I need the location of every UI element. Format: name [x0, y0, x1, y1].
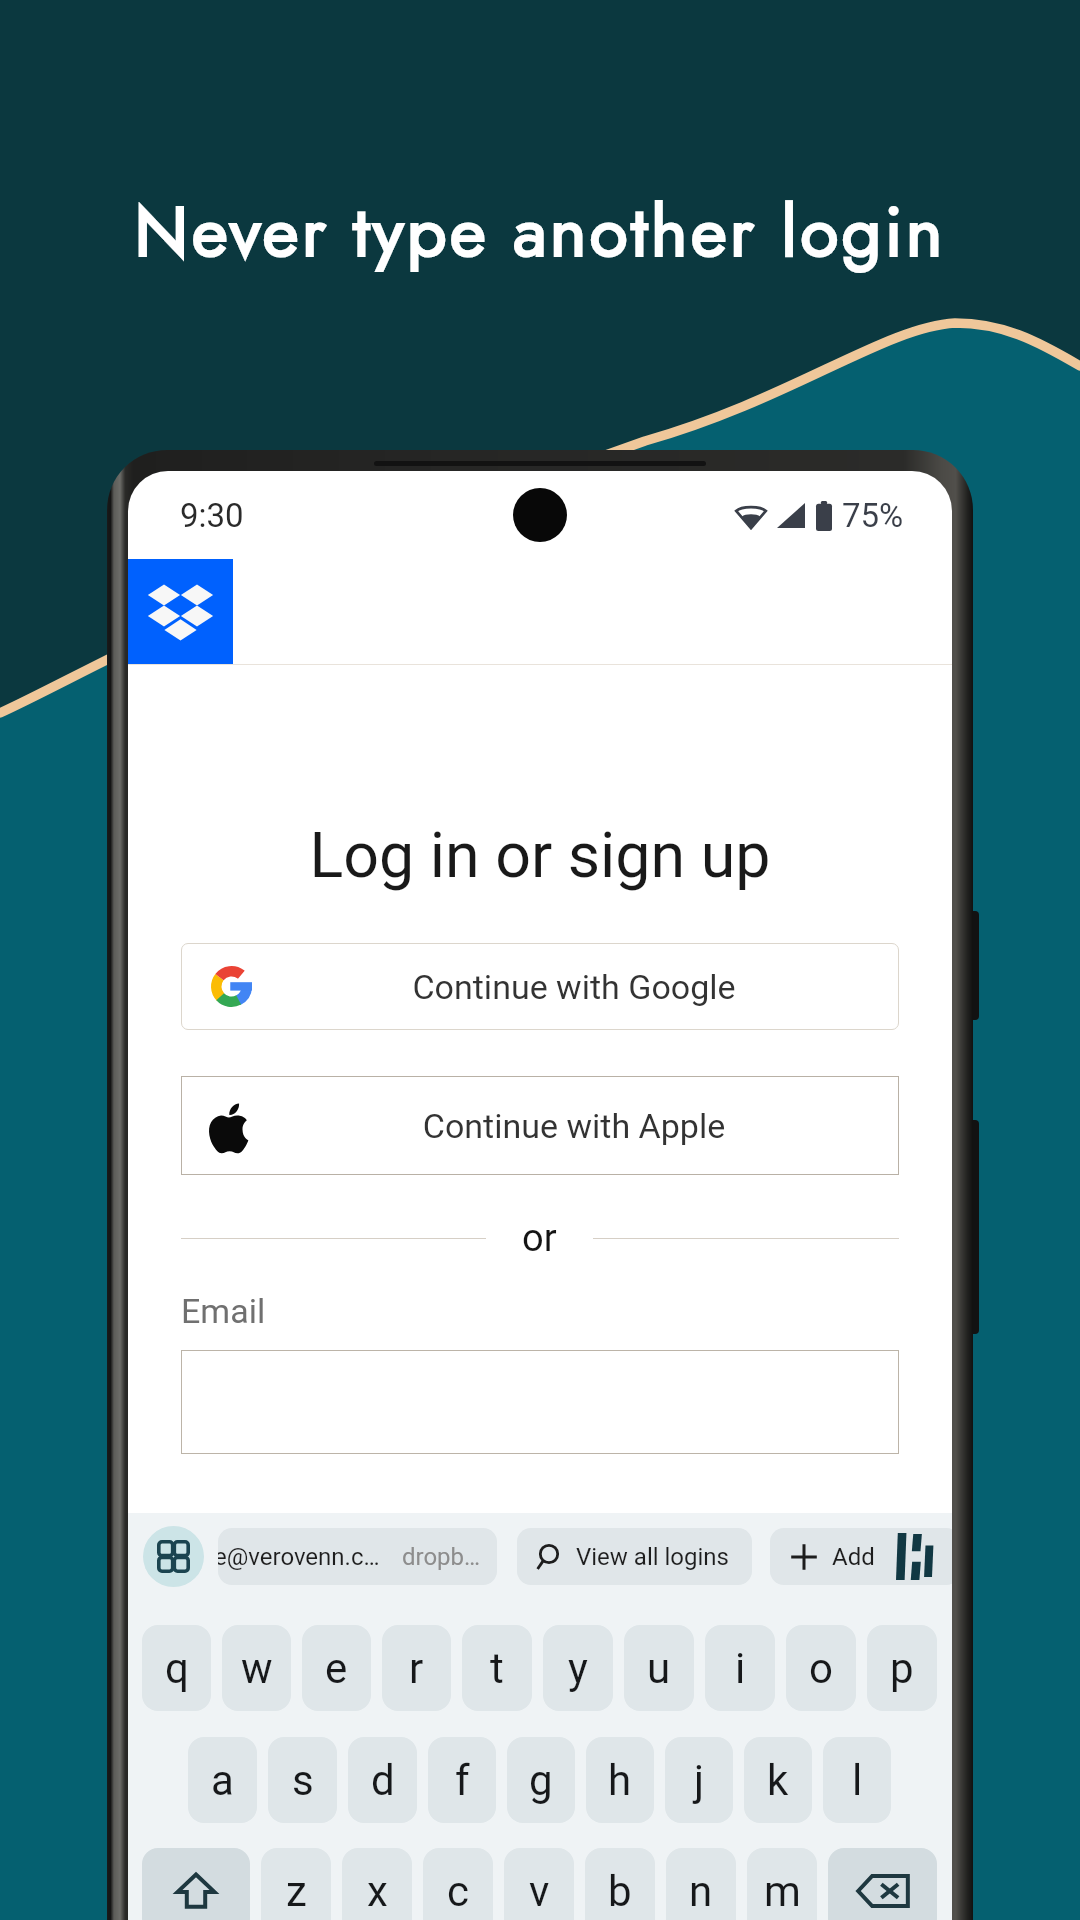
staticText: p — [890, 1644, 914, 1693]
staticText: Email — [181, 1291, 266, 1331]
button[interactable]: e — [302, 1625, 371, 1711]
staticText: Continue with Apple — [249, 1106, 899, 1146]
staticText: l — [852, 1756, 863, 1805]
staticText: q — [165, 1644, 189, 1693]
button[interactable]: h — [586, 1737, 654, 1823]
staticText: v — [529, 1867, 550, 1916]
button[interactable]: s — [268, 1737, 337, 1823]
staticText: b — [608, 1867, 632, 1916]
staticText: a — [211, 1756, 234, 1805]
button[interactable]: Continue with Apple — [181, 1076, 899, 1175]
button[interactable]: q — [142, 1625, 211, 1711]
staticText: 75% — [842, 496, 904, 535]
staticText: Add — [832, 1543, 875, 1571]
staticText: s — [292, 1756, 314, 1805]
button[interactable]: k — [744, 1737, 812, 1823]
button[interactable]: p — [867, 1625, 937, 1711]
staticText: Never type another login — [0, 181, 1080, 282]
other: Backspace — [856, 1870, 910, 1912]
button[interactable]: r — [382, 1625, 451, 1711]
button[interactable]: e@verovenn.c… — [218, 1528, 497, 1585]
staticText: View all logins — [576, 1543, 729, 1571]
staticText: m — [764, 1867, 801, 1916]
button[interactable]: Dropbox — [128, 559, 233, 664]
staticText: h — [608, 1756, 632, 1805]
button[interactable]: t — [462, 1625, 532, 1711]
staticText: j — [694, 1756, 705, 1805]
button[interactable]: y — [543, 1625, 613, 1711]
button[interactable]: z — [261, 1848, 331, 1920]
staticText: o — [809, 1644, 833, 1693]
other: Dashlane — [896, 1532, 932, 1580]
staticText: Log in or sign up — [128, 819, 952, 892]
button[interactable]: a — [188, 1737, 257, 1823]
staticText: g — [529, 1756, 553, 1805]
staticText: t — [490, 1644, 504, 1693]
staticText: Continue with Google — [249, 967, 899, 1007]
staticText: d — [371, 1756, 395, 1805]
staticText: dropb… — [402, 1543, 481, 1571]
button[interactable]: w — [222, 1625, 291, 1711]
staticText: x — [367, 1867, 388, 1916]
staticText: e — [325, 1644, 348, 1693]
other: Shift — [173, 1868, 219, 1914]
button[interactable]: j — [665, 1737, 733, 1823]
staticText: r — [409, 1644, 424, 1693]
staticText: y — [568, 1644, 588, 1693]
button[interactable]: c — [423, 1848, 493, 1920]
button[interactable] — [181, 1350, 899, 1454]
button[interactable]: n — [666, 1848, 736, 1920]
button[interactable]: f — [428, 1737, 496, 1823]
button[interactable]: m — [747, 1848, 817, 1920]
button[interactable]: Shift — [142, 1848, 250, 1920]
button[interactable]: g — [507, 1737, 575, 1823]
button[interactable]: d — [348, 1737, 417, 1823]
button[interactable]: Backspace — [828, 1848, 937, 1920]
staticText: w — [241, 1644, 273, 1693]
staticText: 9:30 — [180, 496, 244, 535]
staticText: f — [455, 1756, 470, 1805]
button[interactable]: u — [624, 1625, 694, 1711]
staticText: or — [522, 1216, 557, 1261]
staticText: k — [767, 1756, 789, 1805]
button[interactable]: View all logins — [534, 1528, 752, 1585]
staticText: i — [735, 1644, 746, 1693]
button[interactable]: v — [504, 1848, 574, 1920]
staticText: c — [447, 1867, 469, 1916]
staticText: e@verovenn.c… — [218, 1543, 380, 1571]
staticText: u — [647, 1644, 671, 1693]
staticText: z — [286, 1867, 307, 1916]
button[interactable]: i — [705, 1625, 775, 1711]
staticText: n — [689, 1867, 713, 1916]
button[interactable]: Add — [788, 1528, 952, 1585]
button[interactable]: x — [342, 1848, 412, 1920]
button[interactable]: b — [585, 1848, 655, 1920]
button[interactable]: o — [786, 1625, 856, 1711]
button[interactable]: Continue with Google — [181, 943, 899, 1030]
button[interactable]: Autofill menu — [143, 1526, 204, 1587]
button[interactable]: l — [823, 1737, 891, 1823]
